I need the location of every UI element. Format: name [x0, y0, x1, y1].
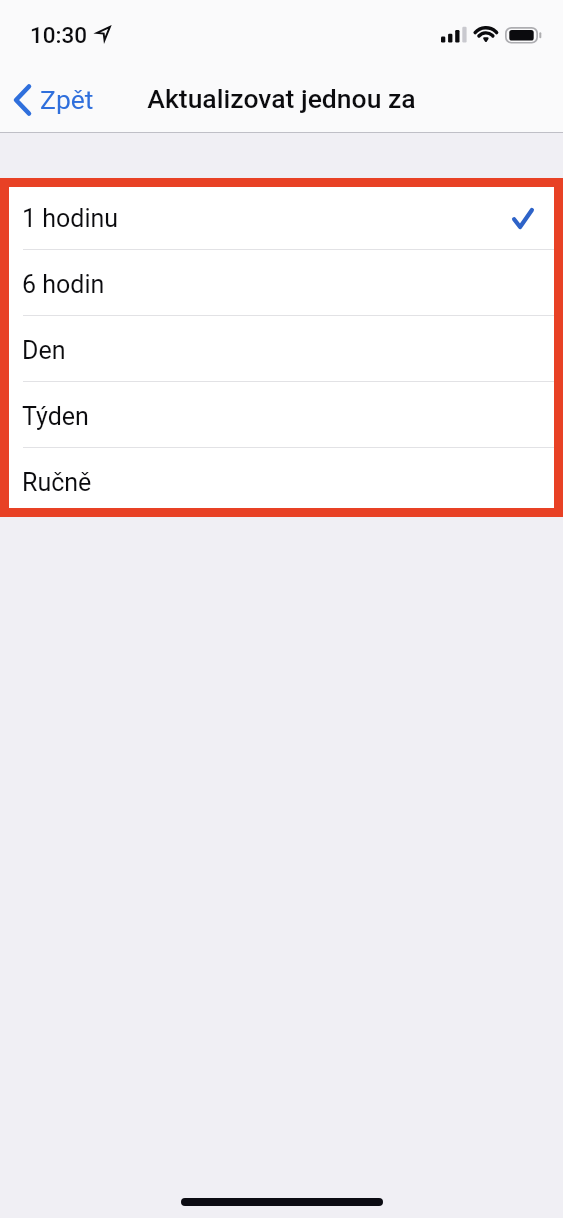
- other: Baterie: [505, 27, 543, 45]
- button[interactable]: 1 hodinu: [0, 184, 563, 250]
- staticText: 6 hodin: [22, 270, 105, 299]
- staticText: Týden: [22, 402, 89, 431]
- other: Poloha: [96, 26, 113, 43]
- other: Vybráno: [512, 208, 534, 229]
- button[interactable]: 6 hodin: [0, 250, 563, 316]
- staticText: 10:30: [30, 22, 88, 48]
- button[interactable]: Den: [0, 316, 563, 382]
- other: Wi-Fi: [475, 26, 499, 44]
- staticText: 1 hodinu: [22, 204, 119, 233]
- staticText: Den: [22, 336, 66, 365]
- staticText: Aktualizovat jednou za: [147, 83, 416, 114]
- button[interactable]: Týden: [0, 382, 563, 448]
- button[interactable]: Ručně: [0, 448, 563, 514]
- staticText: Ručně: [22, 468, 92, 497]
- button[interactable]: Zpět: [6, 80, 104, 119]
- other: Signál: [441, 26, 468, 44]
- staticText: Zpět: [40, 84, 94, 115]
